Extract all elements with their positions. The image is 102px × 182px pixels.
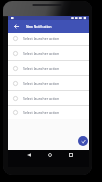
button[interactable]: Recents — [65, 149, 77, 161]
button[interactable]: Select launcher action — [8, 91, 89, 105]
staticText: Select launcher action — [23, 51, 60, 56]
button[interactable]: Select launcher action — [8, 46, 89, 60]
button[interactable]: Back — [23, 149, 35, 161]
staticText: Select launcher action — [23, 96, 60, 101]
button[interactable]: Confirm — [78, 136, 88, 146]
staticText: Select launcher action — [23, 36, 60, 41]
staticText: Select launcher action — [23, 110, 60, 115]
button[interactable]: Home — [44, 149, 56, 161]
staticText: Select launcher action — [23, 81, 60, 86]
button[interactable]: Select launcher action — [8, 76, 89, 90]
button[interactable]: Back — [8, 20, 25, 33]
button[interactable]: Select launcher action — [8, 33, 89, 45]
button[interactable]: Select launcher action — [8, 106, 89, 119]
staticText: New Notification — [26, 25, 52, 29]
button[interactable]: Select launcher action — [8, 61, 89, 75]
staticText: Select launcher action — [23, 66, 60, 71]
